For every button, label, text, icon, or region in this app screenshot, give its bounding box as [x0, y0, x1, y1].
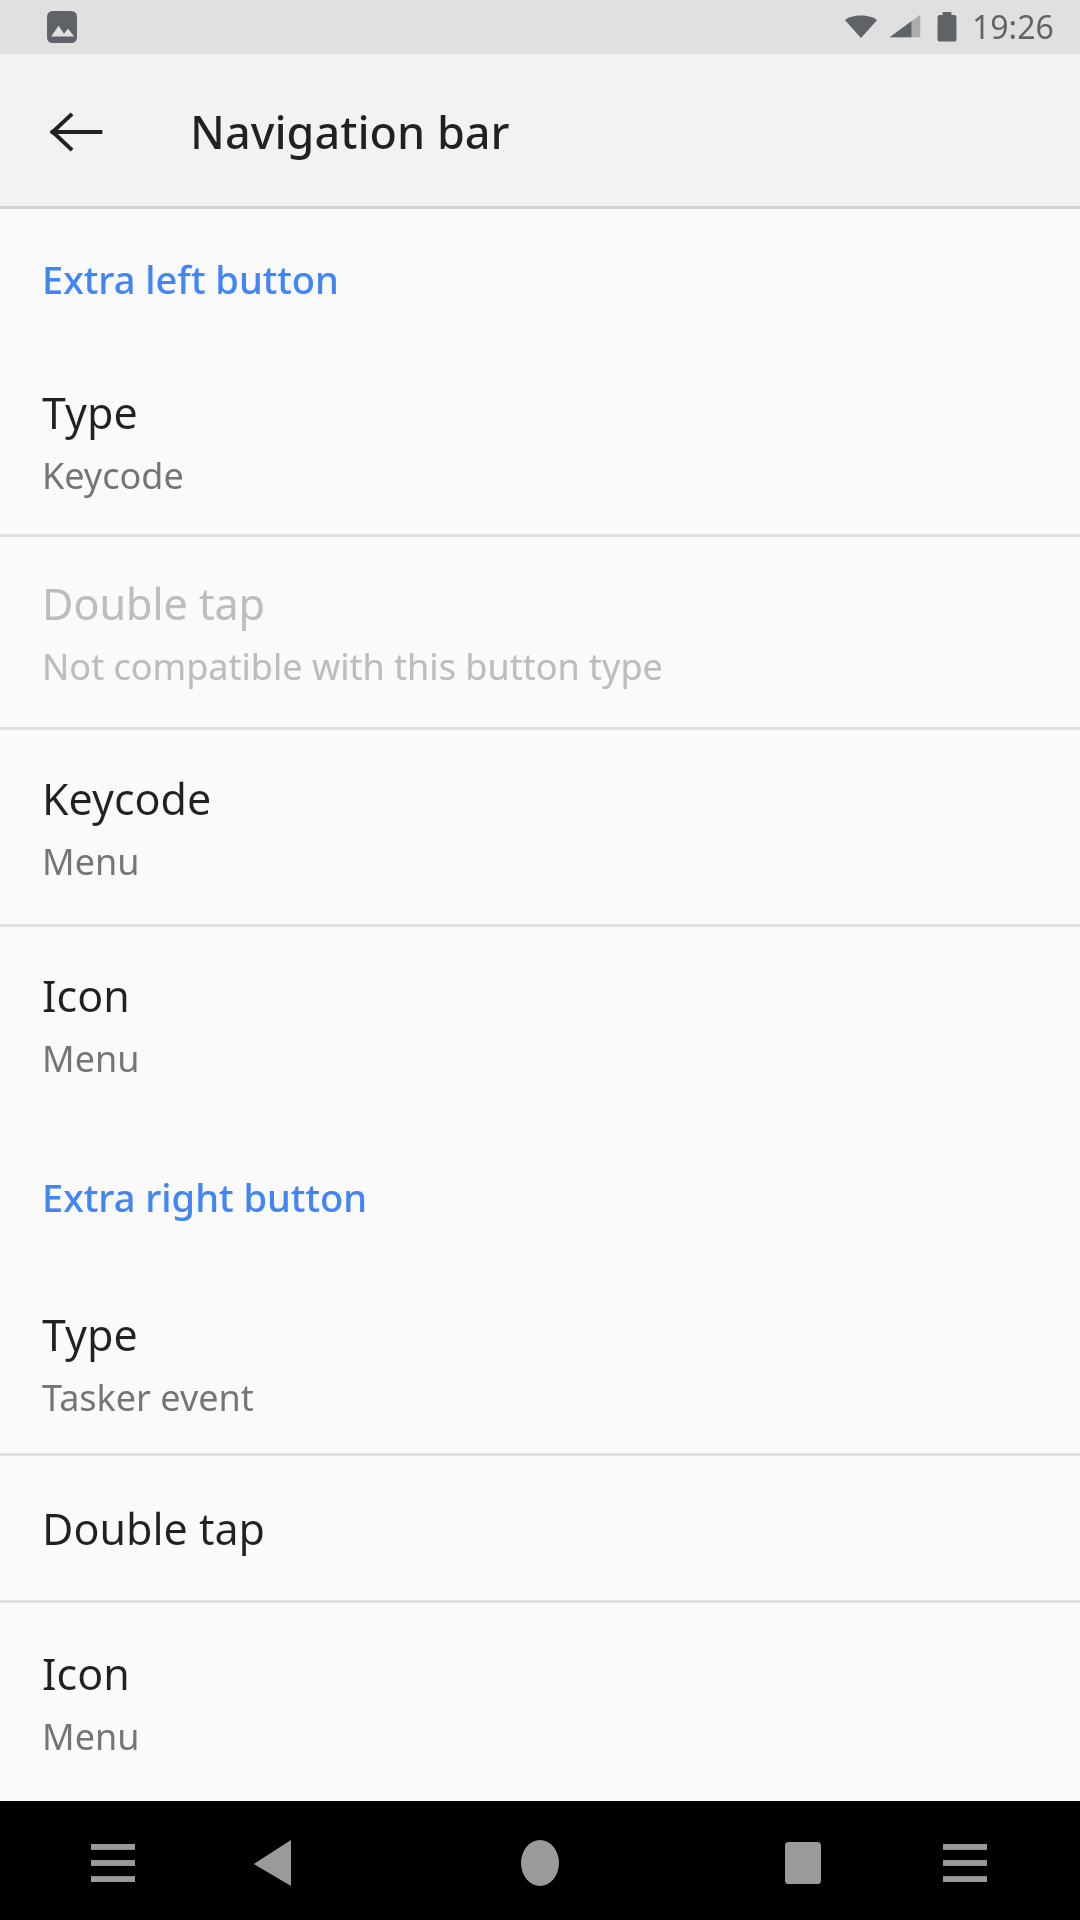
staticText: 19:26: [972, 5, 1054, 49]
button[interactable]: Double tap: [0, 537, 1080, 727]
staticText: Double tap: [42, 574, 266, 633]
staticText: Icon: [42, 966, 130, 1025]
button[interactable]: Home: [480, 1801, 600, 1920]
staticText: Keycode: [42, 769, 212, 828]
staticText: Type: [42, 383, 138, 442]
button[interactable]: Icon: [0, 927, 1080, 1121]
staticText: Double tap: [42, 1499, 266, 1558]
staticText: Icon: [42, 1644, 130, 1703]
staticText: Type: [42, 1305, 138, 1364]
button[interactable]: Menu: [905, 1801, 1025, 1920]
staticText: Extra right button: [42, 1171, 367, 1223]
button[interactable]: Recents: [743, 1801, 863, 1920]
staticText: Not compatible with this button type: [42, 642, 663, 691]
button[interactable]: Type: [0, 349, 1080, 534]
button[interactable]: Icon: [0, 1603, 1080, 1801]
button[interactable]: Type: [0, 1273, 1080, 1453]
button[interactable]: Back: [212, 1801, 332, 1920]
staticText: Navigation bar: [190, 101, 510, 162]
button[interactable]: Double tap: [0, 1456, 1080, 1600]
button[interactable]: Back: [30, 86, 122, 178]
staticText: Tasker event: [42, 1373, 254, 1422]
staticText: Menu: [42, 837, 140, 886]
button[interactable]: Keycode: [0, 730, 1080, 924]
staticText: Menu: [42, 1712, 140, 1761]
staticText: Keycode: [42, 451, 184, 500]
button[interactable]: Menu: [53, 1801, 173, 1920]
staticText: Extra left button: [42, 253, 339, 305]
staticText: Menu: [42, 1034, 140, 1083]
